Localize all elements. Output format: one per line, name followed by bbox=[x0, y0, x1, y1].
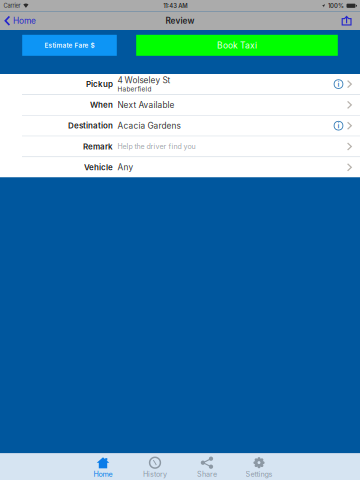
staticText: Review bbox=[165, 16, 194, 26]
button[interactable]: Home bbox=[0, 14, 36, 27]
staticText: 100% bbox=[328, 2, 344, 9]
button[interactable]: Pickup bbox=[0, 74, 360, 94]
staticText: Book Taxi bbox=[217, 40, 257, 50]
button[interactable]: Estimate Fare $ bbox=[22, 35, 117, 56]
staticText: Home bbox=[93, 470, 112, 478]
staticText: 11:43 AM bbox=[163, 2, 187, 9]
button[interactable]: Share bbox=[338, 14, 355, 28]
staticText: Share bbox=[197, 470, 217, 478]
button[interactable]: Destination bbox=[0, 116, 360, 136]
staticText: i bbox=[337, 80, 339, 88]
staticText: i bbox=[337, 121, 339, 130]
button[interactable]: Book Taxi bbox=[136, 35, 338, 56]
button[interactable]: Share bbox=[181, 454, 233, 480]
staticText: When bbox=[90, 100, 113, 110]
button[interactable]: Home bbox=[77, 454, 129, 480]
staticText: 4 Wolseley St bbox=[118, 75, 171, 85]
staticText: Home bbox=[13, 16, 36, 26]
staticText: Any bbox=[118, 162, 134, 172]
staticText: Vehicle bbox=[84, 162, 113, 172]
staticText: Settings bbox=[245, 470, 272, 478]
staticText: Next Available bbox=[118, 100, 175, 110]
staticText: History bbox=[143, 470, 167, 478]
staticText: Remark bbox=[83, 142, 113, 151]
staticText: Acacia Gardens bbox=[118, 121, 181, 131]
button[interactable]: Settings bbox=[233, 454, 285, 480]
staticText: Haberfield bbox=[118, 85, 152, 93]
button[interactable]: When bbox=[0, 95, 360, 115]
staticText: Destination bbox=[68, 121, 113, 131]
staticText: Carrier bbox=[4, 2, 21, 9]
staticText: Help the driver find you bbox=[118, 142, 196, 151]
button[interactable]: Vehicle bbox=[0, 157, 360, 177]
button[interactable]: Remark bbox=[0, 136, 360, 157]
button[interactable]: History bbox=[129, 454, 181, 480]
staticText: Pickup bbox=[86, 79, 113, 89]
staticText: Estimate Fare $ bbox=[44, 41, 94, 49]
